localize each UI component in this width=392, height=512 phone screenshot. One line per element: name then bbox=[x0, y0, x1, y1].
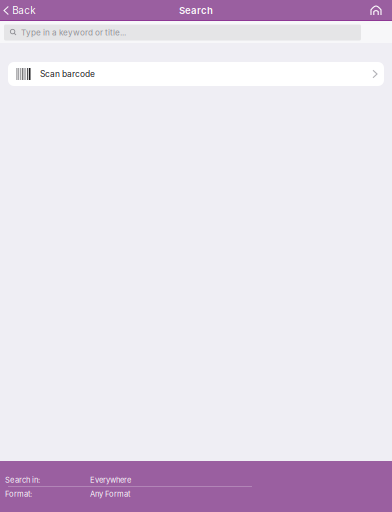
button[interactable]: Search field bbox=[4, 24, 361, 40]
button[interactable]: Home bbox=[360, 0, 392, 21]
button[interactable]: Format: bbox=[0, 487, 392, 501]
staticText: Search bbox=[179, 5, 213, 16]
staticText: Format: bbox=[5, 489, 32, 499]
staticText: Scan barcode bbox=[40, 69, 95, 79]
staticText: Type in a keyword or title... bbox=[21, 28, 126, 37]
button[interactable]: Search in: bbox=[0, 473, 392, 487]
staticText: Search in: bbox=[5, 475, 40, 485]
staticText: Everywhere bbox=[90, 475, 131, 485]
button[interactable]: Scan barcode bbox=[8, 62, 384, 86]
button[interactable]: Back bbox=[0, 0, 43, 21]
staticText: Back bbox=[12, 4, 35, 16]
staticText: Any Format bbox=[90, 489, 130, 499]
